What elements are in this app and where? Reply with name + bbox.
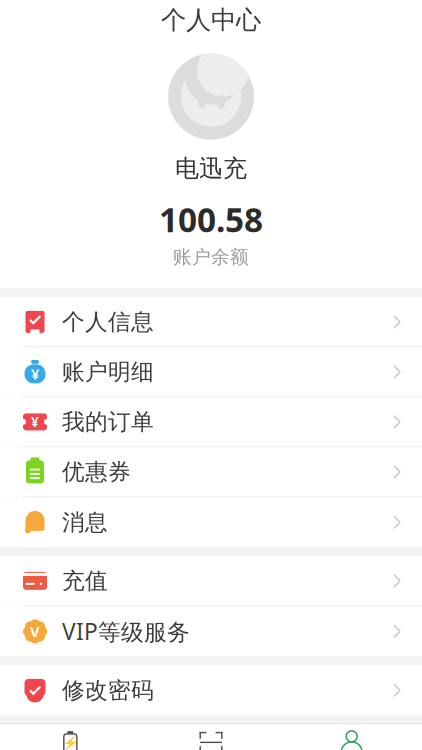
button[interactable]: ¥ xyxy=(0,397,422,447)
button[interactable]: ⚡ xyxy=(0,724,141,750)
button[interactable]: 消息 xyxy=(0,497,422,547)
staticText: 个人信息 xyxy=(62,308,154,336)
staticText: ⚡ xyxy=(63,736,78,750)
button[interactable]: 个人信息 xyxy=(0,297,422,347)
button[interactable]: 优惠券 xyxy=(0,447,422,497)
staticText: 电迅充 xyxy=(175,154,247,183)
staticText: 消息 xyxy=(62,508,108,536)
staticText: 个人中心 xyxy=(161,5,261,36)
staticText: ¥ xyxy=(31,364,39,384)
staticText: V xyxy=(30,622,40,641)
staticText: VIP等级服务 xyxy=(62,616,190,646)
staticText: 优惠券 xyxy=(62,458,131,486)
button[interactable]: V xyxy=(0,606,422,656)
staticText: 账户明细 xyxy=(62,358,154,386)
staticText: ¥ xyxy=(31,413,39,431)
staticText: 我的订单 xyxy=(62,408,154,436)
staticText: 修改密码 xyxy=(62,676,154,704)
staticText: 充值 xyxy=(62,567,108,595)
button[interactable]: ¥ xyxy=(0,347,422,397)
staticText: 100.58 xyxy=(159,197,263,241)
button[interactable]: 我的 xyxy=(281,724,422,750)
button[interactable]: 充值 xyxy=(0,556,422,606)
staticText: 账户余额 xyxy=(173,245,249,268)
button[interactable]: 修改密码 xyxy=(0,665,422,715)
button[interactable]: 充电 xyxy=(141,724,281,750)
